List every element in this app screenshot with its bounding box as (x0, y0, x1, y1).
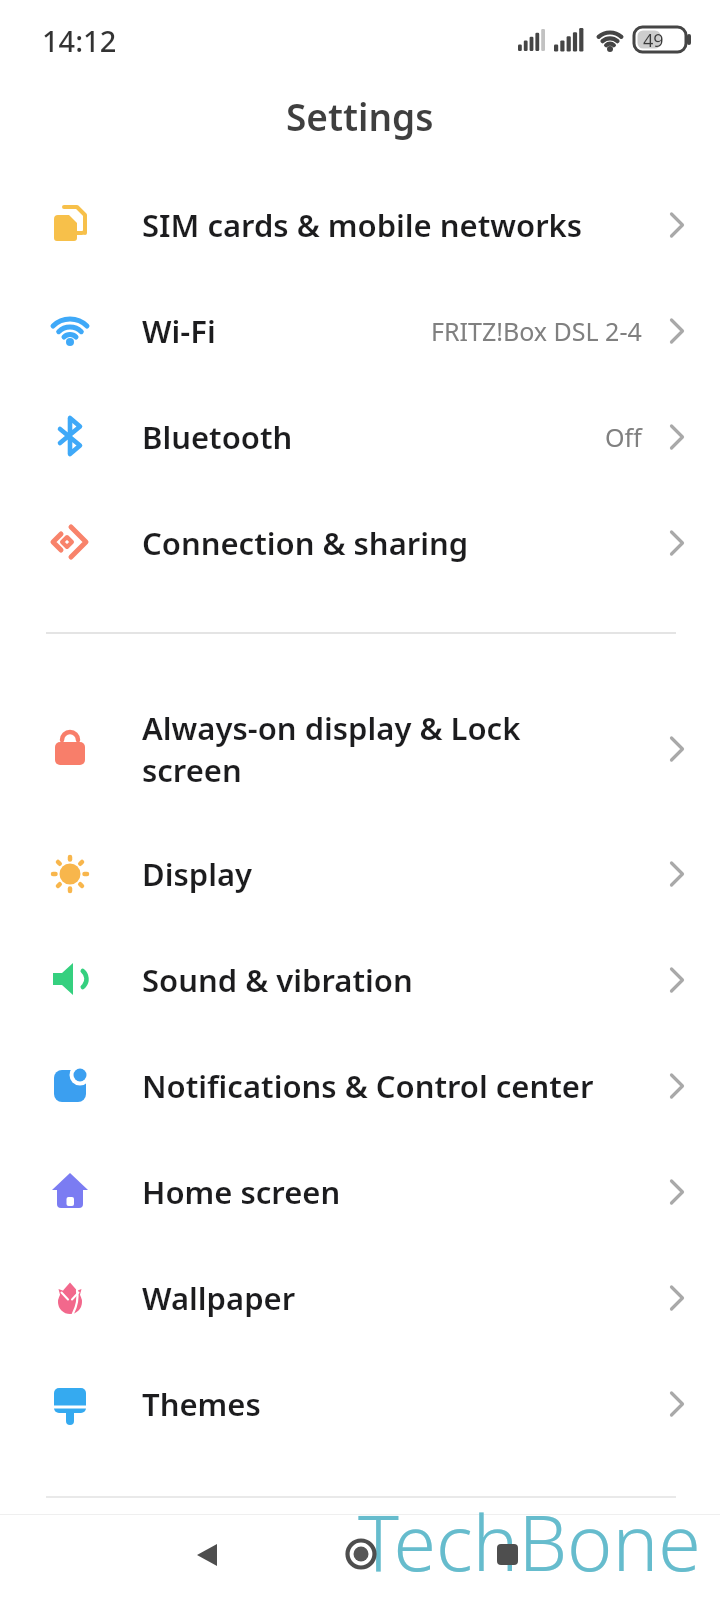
staticText: SIM cards & mobile networks (142, 204, 583, 246)
staticText: Settings (286, 91, 434, 141)
button[interactable]: Themes (0, 1351, 720, 1457)
button[interactable]: Wallpaper (0, 1245, 720, 1351)
button[interactable] (497, 1544, 519, 1566)
staticText: 49 (643, 28, 664, 53)
button[interactable] (196, 1544, 220, 1568)
button[interactable]: SIM cards & mobile networks (0, 172, 720, 278)
button[interactable]: Always-on display & Lock (0, 676, 720, 821)
staticText: Sound & vibration (142, 959, 413, 1001)
staticText: Display (142, 853, 253, 895)
staticText: 14:12 (42, 21, 117, 60)
staticText: Connection & sharing (142, 522, 469, 564)
button[interactable]: Display (0, 821, 720, 927)
button[interactable]: Notifications & Control center (0, 1033, 720, 1139)
button[interactable]: Sound & vibration (0, 927, 720, 1033)
staticText: Notifications & Control center (142, 1065, 594, 1107)
button[interactable]: Home screen (0, 1139, 720, 1245)
button[interactable]: Wi-Fi (0, 278, 720, 384)
staticText: Wi-Fi (142, 310, 216, 352)
button[interactable]: Connection & sharing (0, 490, 720, 596)
staticText: Wallpaper (142, 1277, 296, 1319)
staticText: TechBone (358, 1489, 701, 1593)
staticText: Always-on display & Lock (142, 707, 521, 749)
staticText: Bluetooth (142, 416, 293, 458)
button[interactable]: Bluetooth (0, 384, 720, 490)
button[interactable] (344, 1537, 378, 1571)
staticText: screen (142, 749, 242, 791)
staticText: Off (605, 420, 642, 454)
staticText: Home screen (142, 1171, 341, 1213)
staticText: Themes (142, 1383, 261, 1425)
staticText: FRITZ!Box DSL 2-4 (431, 314, 642, 348)
